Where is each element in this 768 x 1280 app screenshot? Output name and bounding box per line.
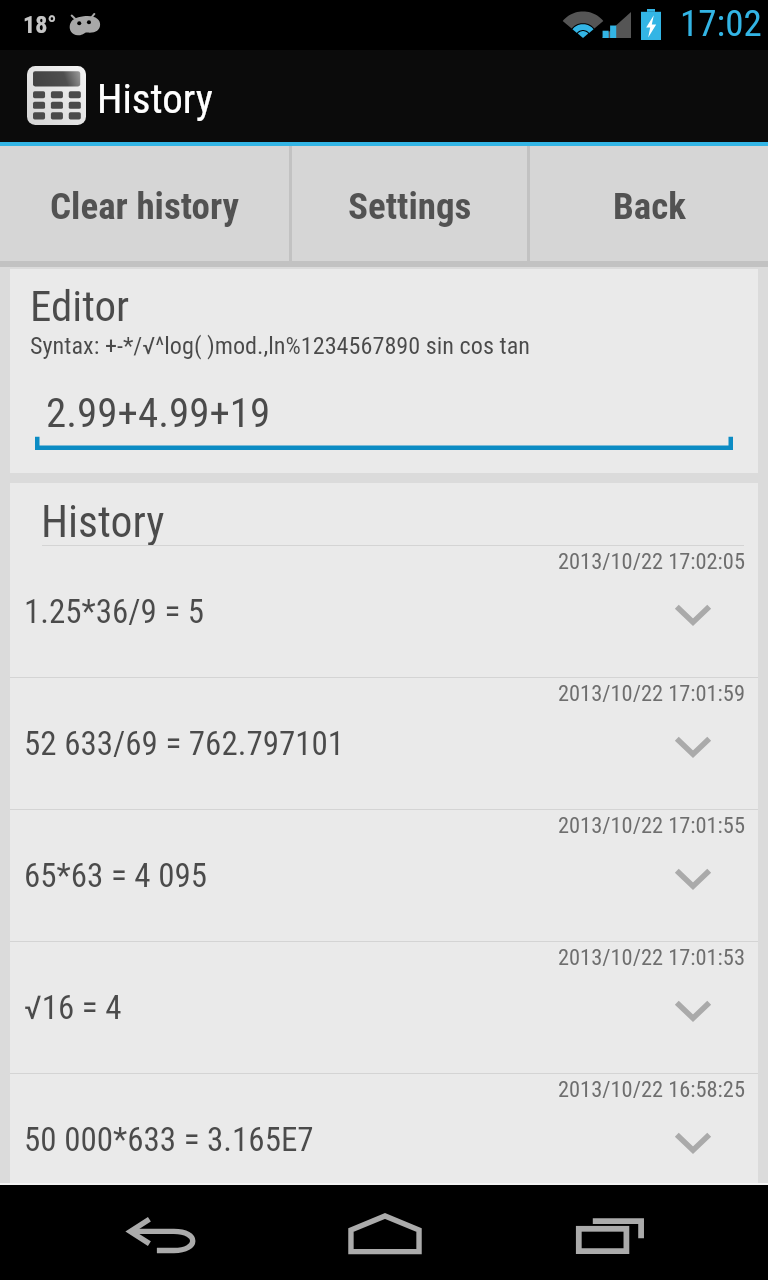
button[interactable]: Clear history	[0, 146, 289, 261]
staticText: Editor	[30, 281, 130, 331]
button[interactable]: Back	[530, 146, 768, 261]
staticText: Back	[613, 185, 686, 228]
staticText: 2013/10/22 17:01:53	[558, 944, 745, 970]
staticText: 2013/10/22 17:02:05	[558, 548, 745, 574]
staticText: √16 = 4	[24, 988, 122, 1027]
staticText: Settings	[348, 185, 472, 228]
staticText: 2013/10/22 17:01:59	[558, 680, 745, 706]
button[interactable]: Recent apps	[521, 1188, 701, 1280]
staticText: Clear history	[50, 185, 240, 228]
button[interactable]: Home	[295, 1186, 475, 1280]
button[interactable]: 2013/10/22 17:01:53	[10, 942, 758, 1074]
staticText: History	[97, 75, 213, 123]
button[interactable]: 2013/10/22 17:01:55	[10, 810, 758, 942]
staticText: Syntax: +-*/√^log( )mod.,ln%1234567890 s…	[30, 332, 530, 360]
staticText: History	[41, 496, 165, 546]
button[interactable]: Settings	[292, 146, 527, 261]
staticText: 2.99+4.99+19	[46, 389, 271, 437]
staticText: 2013/10/22 17:01:55	[558, 812, 745, 838]
staticText: 17:02	[680, 2, 762, 45]
button[interactable]: 2013/10/22 16:58:25	[10, 1074, 758, 1183]
staticText: 52 633/69 = 762.797101	[24, 724, 345, 763]
button[interactable]: 2013/10/22 17:01:59	[10, 678, 758, 810]
staticText: 1.25*36/9 = 5	[24, 592, 205, 631]
button[interactable]: Back	[73, 1187, 253, 1280]
staticText: 65*63 = 4 095	[24, 856, 208, 895]
button[interactable]: 2013/10/22 17:02:05	[10, 546, 758, 678]
staticText: 2013/10/22 16:58:25	[558, 1076, 745, 1102]
staticText: 18°	[23, 11, 57, 39]
staticText: 50 000*633 = 3.165E7	[24, 1120, 314, 1159]
